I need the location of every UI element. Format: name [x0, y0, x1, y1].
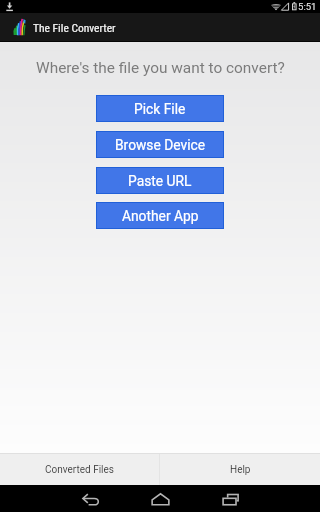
staticText: Browse Device [115, 137, 206, 153]
button[interactable]: Pick File [97, 96, 223, 121]
staticText: Where's the file you want to convert? [36, 59, 285, 77]
button[interactable]: Converted Files [0, 454, 159, 485]
button[interactable]: Paste URL [97, 168, 223, 193]
staticText: Paste URL [128, 173, 192, 189]
button[interactable]: Browse Device [97, 132, 223, 157]
staticText: The File Converter [33, 21, 116, 34]
staticText: Converted Files [45, 464, 114, 476]
button[interactable]: Back [64, 485, 116, 512]
staticText: Another App [122, 208, 199, 224]
staticText: Pick File [134, 101, 186, 117]
button[interactable]: Home [134, 485, 186, 512]
button[interactable]: Help [160, 454, 320, 485]
staticText: Help [230, 464, 251, 476]
staticText: 5:51 [298, 1, 317, 12]
button[interactable]: Another App [97, 203, 223, 228]
button[interactable]: Recent apps [204, 485, 256, 512]
